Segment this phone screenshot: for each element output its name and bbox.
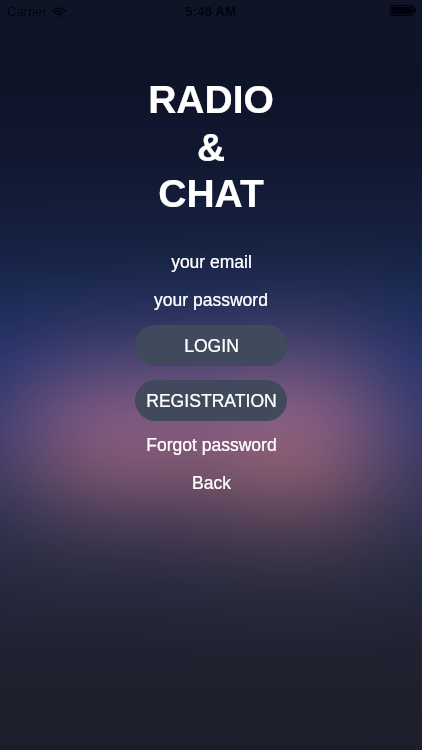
staticText: Carrier xyxy=(7,4,47,19)
staticText: your password xyxy=(154,290,268,310)
staticText: LOGIN xyxy=(184,336,239,356)
button[interactable]: your email xyxy=(171,252,252,272)
staticText: & xyxy=(0,126,422,170)
button[interactable]: Forgot password xyxy=(146,435,277,455)
staticText: CHAT xyxy=(0,172,422,216)
staticText: 5:46 AM xyxy=(185,4,237,19)
staticText: REGISTRATION xyxy=(146,391,277,411)
staticText: RADIO xyxy=(0,78,422,122)
button[interactable]: LOGIN xyxy=(135,325,287,366)
other: Wi-Fi signal xyxy=(52,5,66,19)
button[interactable]: Back xyxy=(192,473,231,493)
staticText: your email xyxy=(171,252,252,272)
other: Battery full xyxy=(390,5,415,16)
staticText: Forgot password xyxy=(146,435,277,455)
button[interactable]: REGISTRATION xyxy=(135,380,287,421)
button[interactable]: your password xyxy=(154,290,268,310)
staticText: Back xyxy=(192,473,231,493)
